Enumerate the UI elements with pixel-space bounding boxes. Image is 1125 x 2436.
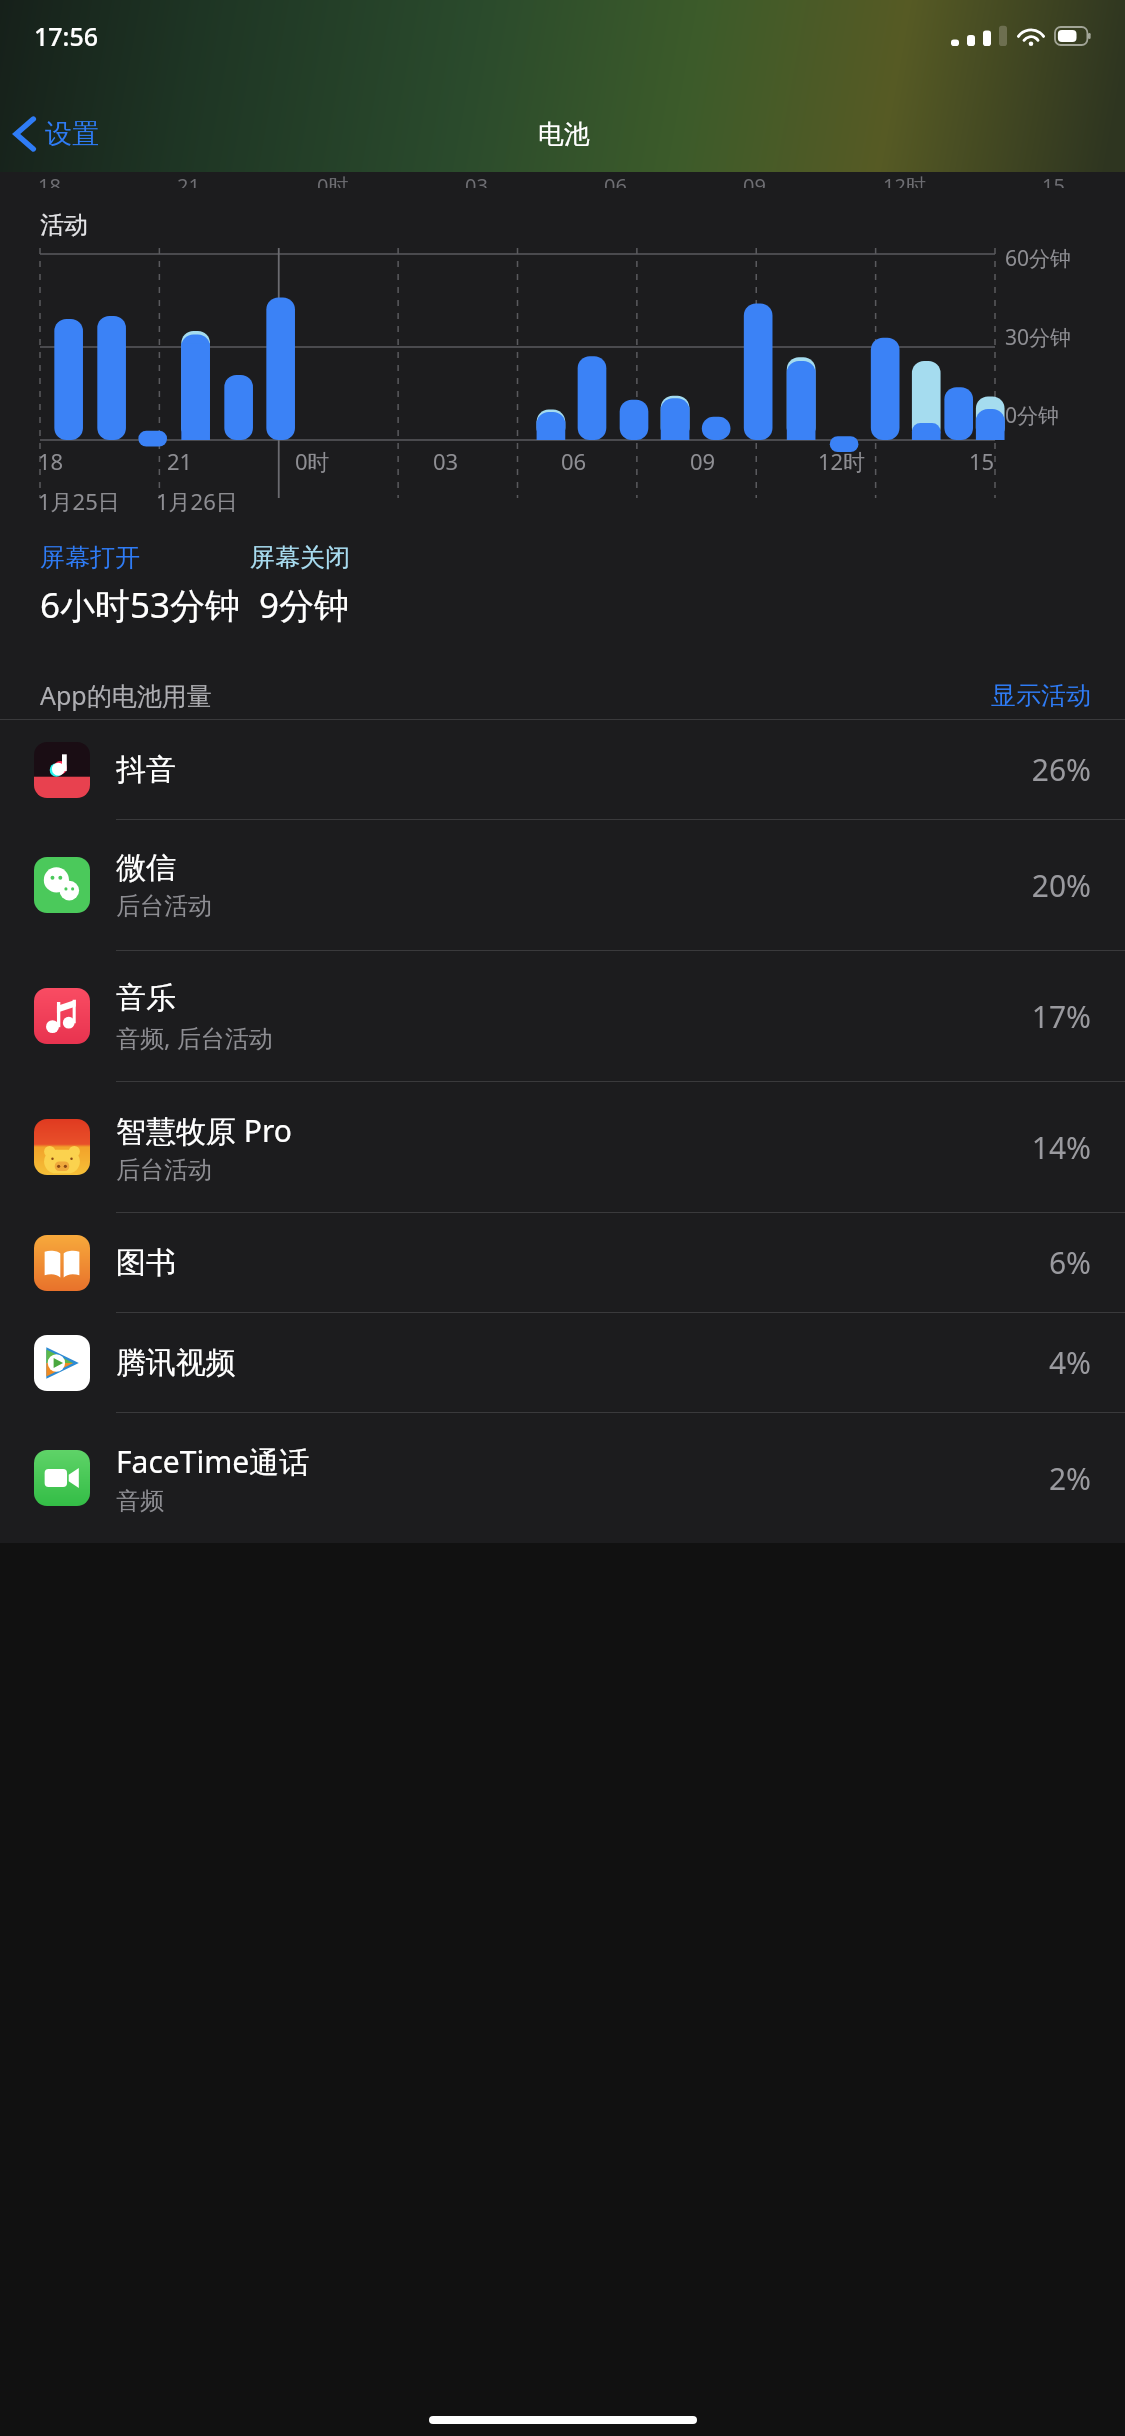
- staticText: 03: [433, 446, 459, 476]
- staticText: 4%: [1048, 1342, 1091, 1383]
- staticText: 18: [38, 172, 61, 188]
- staticText: 03: [465, 172, 488, 188]
- staticText: 0时: [317, 172, 349, 188]
- staticText: 后台活动: [116, 1155, 212, 1185]
- button[interactable]: 显示活动: [991, 680, 1091, 711]
- button[interactable]: 腾讯视频: [0, 1313, 1125, 1412]
- staticText: 15: [1042, 172, 1065, 188]
- staticText: 图书: [116, 1244, 176, 1282]
- staticText: 20%: [1031, 865, 1091, 906]
- staticText: 音频, 后台活动: [116, 1021, 273, 1054]
- button[interactable]: 音乐: [0, 951, 1125, 1081]
- staticText: 18: [38, 446, 64, 476]
- staticText: 电池: [538, 118, 590, 151]
- staticText: 6%: [1048, 1242, 1091, 1283]
- button[interactable]: FaceTime通话: [0, 1413, 1125, 1543]
- staticText: App的电池用量: [40, 678, 212, 712]
- staticText: 0时: [295, 446, 330, 476]
- staticText: 1月25日: [38, 486, 120, 516]
- staticText: 设置: [45, 117, 99, 151]
- staticText: 17:56: [34, 19, 99, 53]
- staticText: 21: [177, 172, 200, 188]
- staticText: 17%: [1031, 996, 1091, 1037]
- staticText: 活动: [40, 210, 88, 240]
- staticText: 12时: [818, 446, 866, 476]
- staticText: 抖音: [116, 751, 176, 789]
- staticText: 14%: [1031, 1127, 1091, 1168]
- staticText: 智慧牧原 Pro: [116, 1110, 292, 1151]
- staticText: 显示活动: [991, 680, 1091, 711]
- staticText: 60分钟: [1005, 244, 1072, 273]
- staticText: 15: [969, 446, 995, 476]
- staticText: 0分钟: [1005, 401, 1060, 430]
- staticText: 26%: [1031, 749, 1091, 790]
- staticText: 06: [604, 172, 627, 188]
- staticText: 9分钟: [259, 581, 350, 629]
- staticText: 06: [561, 446, 587, 476]
- staticText: 12时: [883, 172, 926, 188]
- staticText: 屏幕关闭: [250, 542, 350, 573]
- staticText: 后台活动: [116, 891, 212, 921]
- button[interactable]: 智慧牧原 Pro: [0, 1082, 1125, 1212]
- staticText: 21: [167, 446, 193, 476]
- staticText: 腾讯视频: [116, 1344, 236, 1382]
- staticText: 1月26日: [156, 486, 238, 516]
- staticText: 6小时53分钟: [40, 581, 241, 629]
- button[interactable]: 设置: [0, 102, 113, 166]
- staticText: 微信: [116, 849, 176, 887]
- button[interactable]: 微信: [0, 820, 1125, 950]
- staticText: FaceTime通话: [116, 1441, 310, 1482]
- button[interactable]: 抖音: [0, 720, 1125, 819]
- staticText: 音频: [116, 1486, 164, 1516]
- staticText: 30分钟: [1005, 323, 1072, 352]
- staticText: 09: [743, 172, 766, 188]
- staticText: 屏幕打开: [40, 542, 140, 573]
- staticText: 音乐: [116, 979, 176, 1017]
- staticText: 2%: [1048, 1458, 1091, 1499]
- button[interactable]: 图书: [0, 1213, 1125, 1312]
- staticText: 09: [690, 446, 716, 476]
